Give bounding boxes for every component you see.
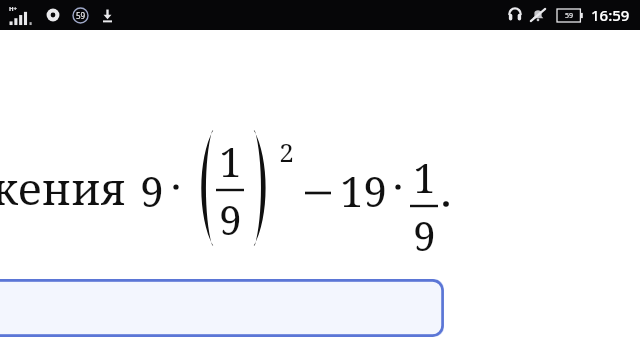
staticText: 9 — [219, 192, 242, 246]
staticText: H+ — [9, 5, 18, 13]
staticText: 9 — [413, 208, 436, 262]
staticText: кения — [0, 158, 126, 218]
staticText: 1 — [219, 134, 242, 188]
staticText: 1 — [413, 150, 436, 204]
staticText: 59 — [76, 10, 86, 21]
staticText: 19 — [340, 162, 387, 219]
staticText: 2 — [279, 134, 294, 169]
staticText: 9 — [140, 162, 164, 219]
button[interactable]: Answer input field — [0, 279, 444, 337]
staticText: 59 — [565, 11, 574, 21]
staticText: 16:59 — [591, 5, 630, 25]
